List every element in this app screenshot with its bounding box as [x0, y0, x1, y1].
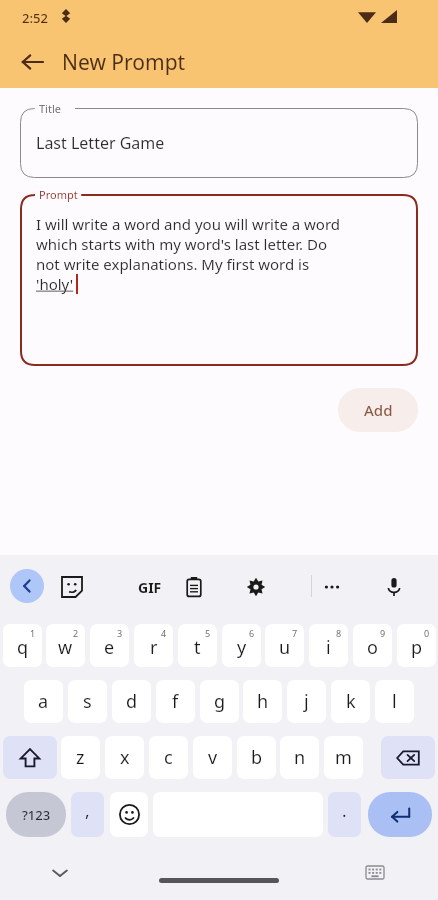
staticText: u — [279, 635, 291, 660]
staticText: k — [346, 689, 356, 714]
staticText: e — [104, 635, 115, 660]
button[interactable]: y — [222, 624, 261, 667]
button[interactable]: Clipboard — [176, 569, 212, 605]
staticText: d — [126, 689, 138, 714]
button[interactable]: Comma — [71, 792, 104, 837]
staticText: 3 — [117, 627, 123, 639]
staticText: x — [120, 745, 130, 770]
button[interactable]: Add — [338, 388, 418, 432]
button[interactable]: j — [287, 680, 326, 723]
staticText: New Prompt — [62, 48, 186, 77]
staticText: f — [172, 689, 179, 714]
button[interactable]: d — [112, 680, 151, 723]
button[interactable]: Sticker — [54, 569, 90, 605]
staticText: s — [83, 689, 92, 714]
button[interactable]: Settings — [238, 569, 274, 605]
button[interactable]: More options — [314, 569, 350, 605]
staticText: ?123 — [22, 806, 51, 824]
button[interactable]: m — [324, 736, 363, 779]
button[interactable]: u — [265, 624, 304, 667]
button[interactable]: a — [24, 680, 63, 723]
button[interactable]: h — [243, 680, 282, 723]
button[interactable]: Emoji — [110, 792, 148, 837]
button[interactable]: r — [134, 624, 173, 667]
staticText: j — [304, 689, 309, 714]
staticText: 4 — [161, 627, 167, 639]
staticText: 6 — [249, 627, 255, 639]
staticText: o — [367, 635, 378, 660]
staticText: b — [251, 745, 263, 770]
staticText: 5 — [205, 627, 211, 639]
button[interactable]: l — [375, 680, 414, 723]
button[interactable]: n — [280, 736, 319, 779]
button[interactable]: Hide keyboard — [40, 853, 80, 893]
button[interactable]: f — [156, 680, 195, 723]
staticText: 7 — [292, 627, 298, 639]
button[interactable]: Symbols — [6, 792, 66, 837]
staticText: 'holy' — [36, 274, 74, 294]
staticText: . — [342, 799, 347, 822]
staticText: r — [150, 635, 158, 660]
button[interactable]: v — [193, 736, 232, 779]
staticText: Last Letter Game — [36, 132, 165, 154]
staticText: 8 — [336, 627, 342, 639]
button[interactable]: q — [3, 624, 42, 667]
staticText: z — [76, 745, 85, 770]
staticText: v — [208, 745, 218, 770]
staticText: m — [335, 745, 352, 770]
button[interactable]: Switch keyboard — [358, 855, 392, 889]
staticText: not write explanations. My first word is — [36, 254, 310, 274]
button[interactable]: Back — [10, 569, 44, 603]
button[interactable]: Back — [10, 40, 54, 84]
staticText: q — [17, 635, 29, 660]
button[interactable]: c — [149, 736, 188, 779]
staticText: y — [237, 635, 247, 660]
button[interactable]: o — [353, 624, 392, 667]
button[interactable]: b — [237, 736, 276, 779]
button[interactable]: Backspace — [381, 736, 435, 779]
staticText: 1 — [30, 627, 36, 639]
staticText: t — [194, 635, 201, 660]
staticText: 0 — [424, 627, 430, 639]
button[interactable]: Title — [20, 108, 418, 178]
button[interactable]: t — [178, 624, 217, 667]
button[interactable]: Prompt — [20, 194, 418, 366]
staticText: l — [392, 689, 397, 714]
staticText: I will write a word and you will write a… — [36, 214, 341, 234]
button[interactable]: k — [331, 680, 370, 723]
staticText: 9 — [380, 627, 386, 639]
staticText: which starts with my word's last letter.… — [36, 234, 327, 254]
staticText: a — [38, 689, 49, 714]
button[interactable]: e — [90, 624, 129, 667]
button[interactable]: Voice input — [376, 569, 412, 605]
staticText: Title — [39, 101, 61, 116]
staticText: 2:52 — [22, 9, 48, 27]
button[interactable]: x — [105, 736, 144, 779]
staticText: i — [326, 635, 331, 660]
staticText: Prompt — [39, 187, 78, 202]
button[interactable]: GIF — [132, 569, 168, 605]
button[interactable]: Shift — [3, 736, 57, 779]
staticText: h — [257, 689, 269, 714]
staticText: p — [411, 635, 423, 660]
staticText: Add — [364, 400, 393, 420]
button[interactable]: i — [309, 624, 348, 667]
button[interactable]: g — [200, 680, 239, 723]
staticText: c — [164, 745, 173, 770]
button[interactable]: s — [68, 680, 107, 723]
staticText: 2 — [73, 627, 79, 639]
staticText: w — [58, 635, 73, 660]
button[interactable]: Period — [328, 792, 361, 837]
button[interactable]: w — [46, 624, 85, 667]
staticText: GIF — [138, 578, 162, 597]
staticText: n — [294, 745, 306, 770]
button[interactable]: z — [61, 736, 100, 779]
staticText: , — [85, 799, 90, 822]
button[interactable]: Enter — [368, 792, 432, 837]
button[interactable]: p — [397, 624, 436, 667]
staticText: g — [214, 689, 226, 714]
